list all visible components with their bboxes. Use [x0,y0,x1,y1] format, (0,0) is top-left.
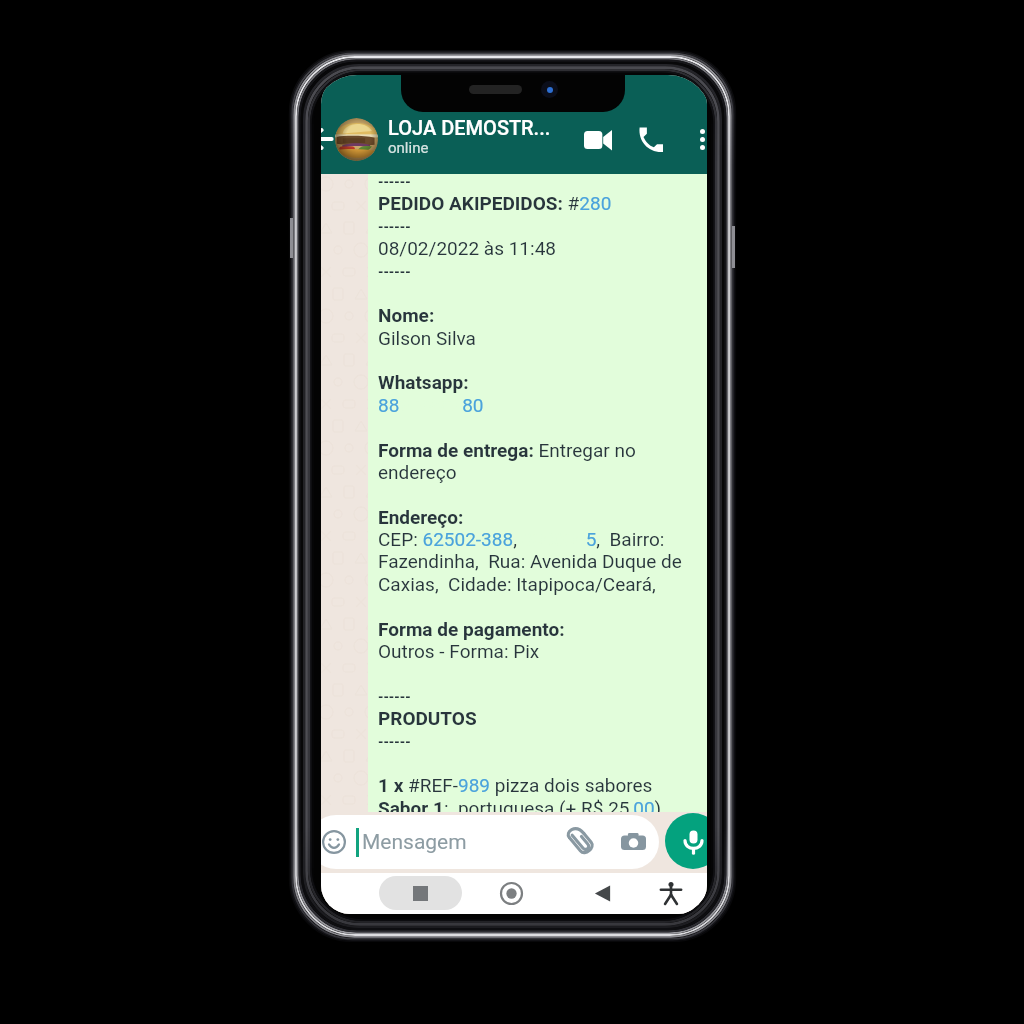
staticText: Outros - Forma: Pix [378,640,540,663]
button[interactable]: Recents [379,876,462,910]
button[interactable]: Video call [578,120,618,160]
staticText: PRODUTOS [378,707,477,730]
button[interactable]: Camera [618,827,648,857]
button[interactable]: Attach [567,827,597,857]
button[interactable]: Emoji [321,815,659,869]
staticText: Fazendinha, Rua: Avenida Duque de [378,550,682,573]
staticText: Sabor 1: portuguesa (+ R$ 25,00) [378,797,662,820]
button[interactable]: Home [493,875,529,911]
staticText: Gilson Silva [378,327,476,350]
button[interactable]: Back [321,125,334,153]
staticText: endereço [378,461,457,484]
button[interactable]: Voice call [630,120,670,160]
staticText: ------ [378,219,411,235]
staticText: ------ [378,174,411,190]
staticText: CEP: 62502-388, 0000005, Bairro: [378,528,665,551]
staticText: PEDIDO AKIPEDIDOS: #280 [378,192,612,215]
button[interactable]: Profile photo [335,118,378,161]
button[interactable]: Voice message [665,813,707,869]
staticText: LOJA DEMOSTR... [388,116,551,139]
staticText: Mensagem [362,830,467,855]
staticText: Endereço: [378,506,464,529]
button[interactable]: More options [685,122,707,156]
button[interactable]: ------ [368,174,707,812]
staticText: ------ [378,734,411,750]
staticText: 1 x #REF-989 pizza dois sabores [378,774,653,797]
staticText: 889 9999 80 [378,394,484,417]
staticText: Forma de pagamento: [378,618,565,641]
staticText: 08/02/2022 às 11:48 [378,237,556,260]
staticText: Caxias, Cidade: Itapipoca/Ceará, [378,573,656,596]
staticText: Whatsapp: [378,371,469,394]
button[interactable]: Emoji [322,830,346,854]
staticText: ------ [378,689,411,705]
staticText: Nome: [378,304,435,327]
button[interactable]: Accessibility [653,875,689,911]
staticText: Forma de entrega: Entregar no [378,439,636,462]
button[interactable]: Back [584,875,620,911]
staticText: online [388,139,429,157]
staticText: ------ [378,264,411,280]
